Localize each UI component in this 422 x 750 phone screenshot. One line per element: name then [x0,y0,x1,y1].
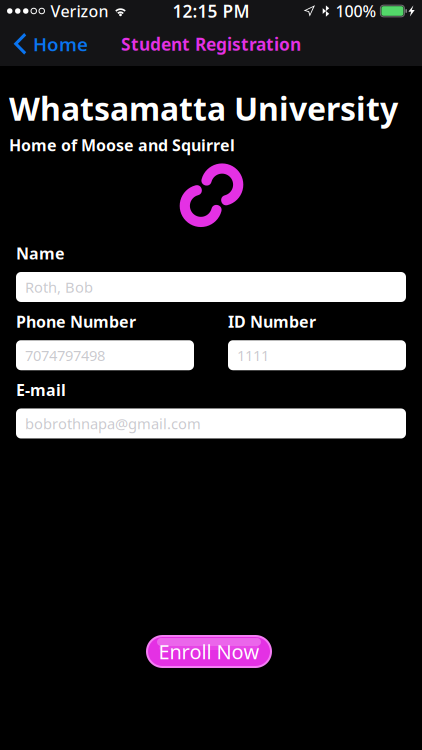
staticText: Enroll Now [158,638,259,665]
staticText: Home of Moose and Squirrel [9,134,235,156]
staticText: Phone Number [16,311,136,332]
staticText: Whatsamatta University [9,87,398,129]
staticText: Roth, Bob [25,277,93,297]
staticText: Verizon [50,0,108,22]
staticText: Student Registration [121,32,301,55]
staticText: Name [16,243,65,264]
staticText: bobrothnapa@gmail.com [25,414,201,433]
button[interactable]: Home [0,22,98,66]
staticText: E-mail [16,379,66,400]
staticText: 1111 [237,345,269,365]
staticText: ID Number [228,311,316,332]
staticText: 7074797498 [25,345,105,365]
staticText: 12:15 PM [172,0,249,22]
button[interactable]: Enroll Now [146,635,272,668]
staticText: Home [33,32,88,56]
staticText: 100% [335,0,376,22]
